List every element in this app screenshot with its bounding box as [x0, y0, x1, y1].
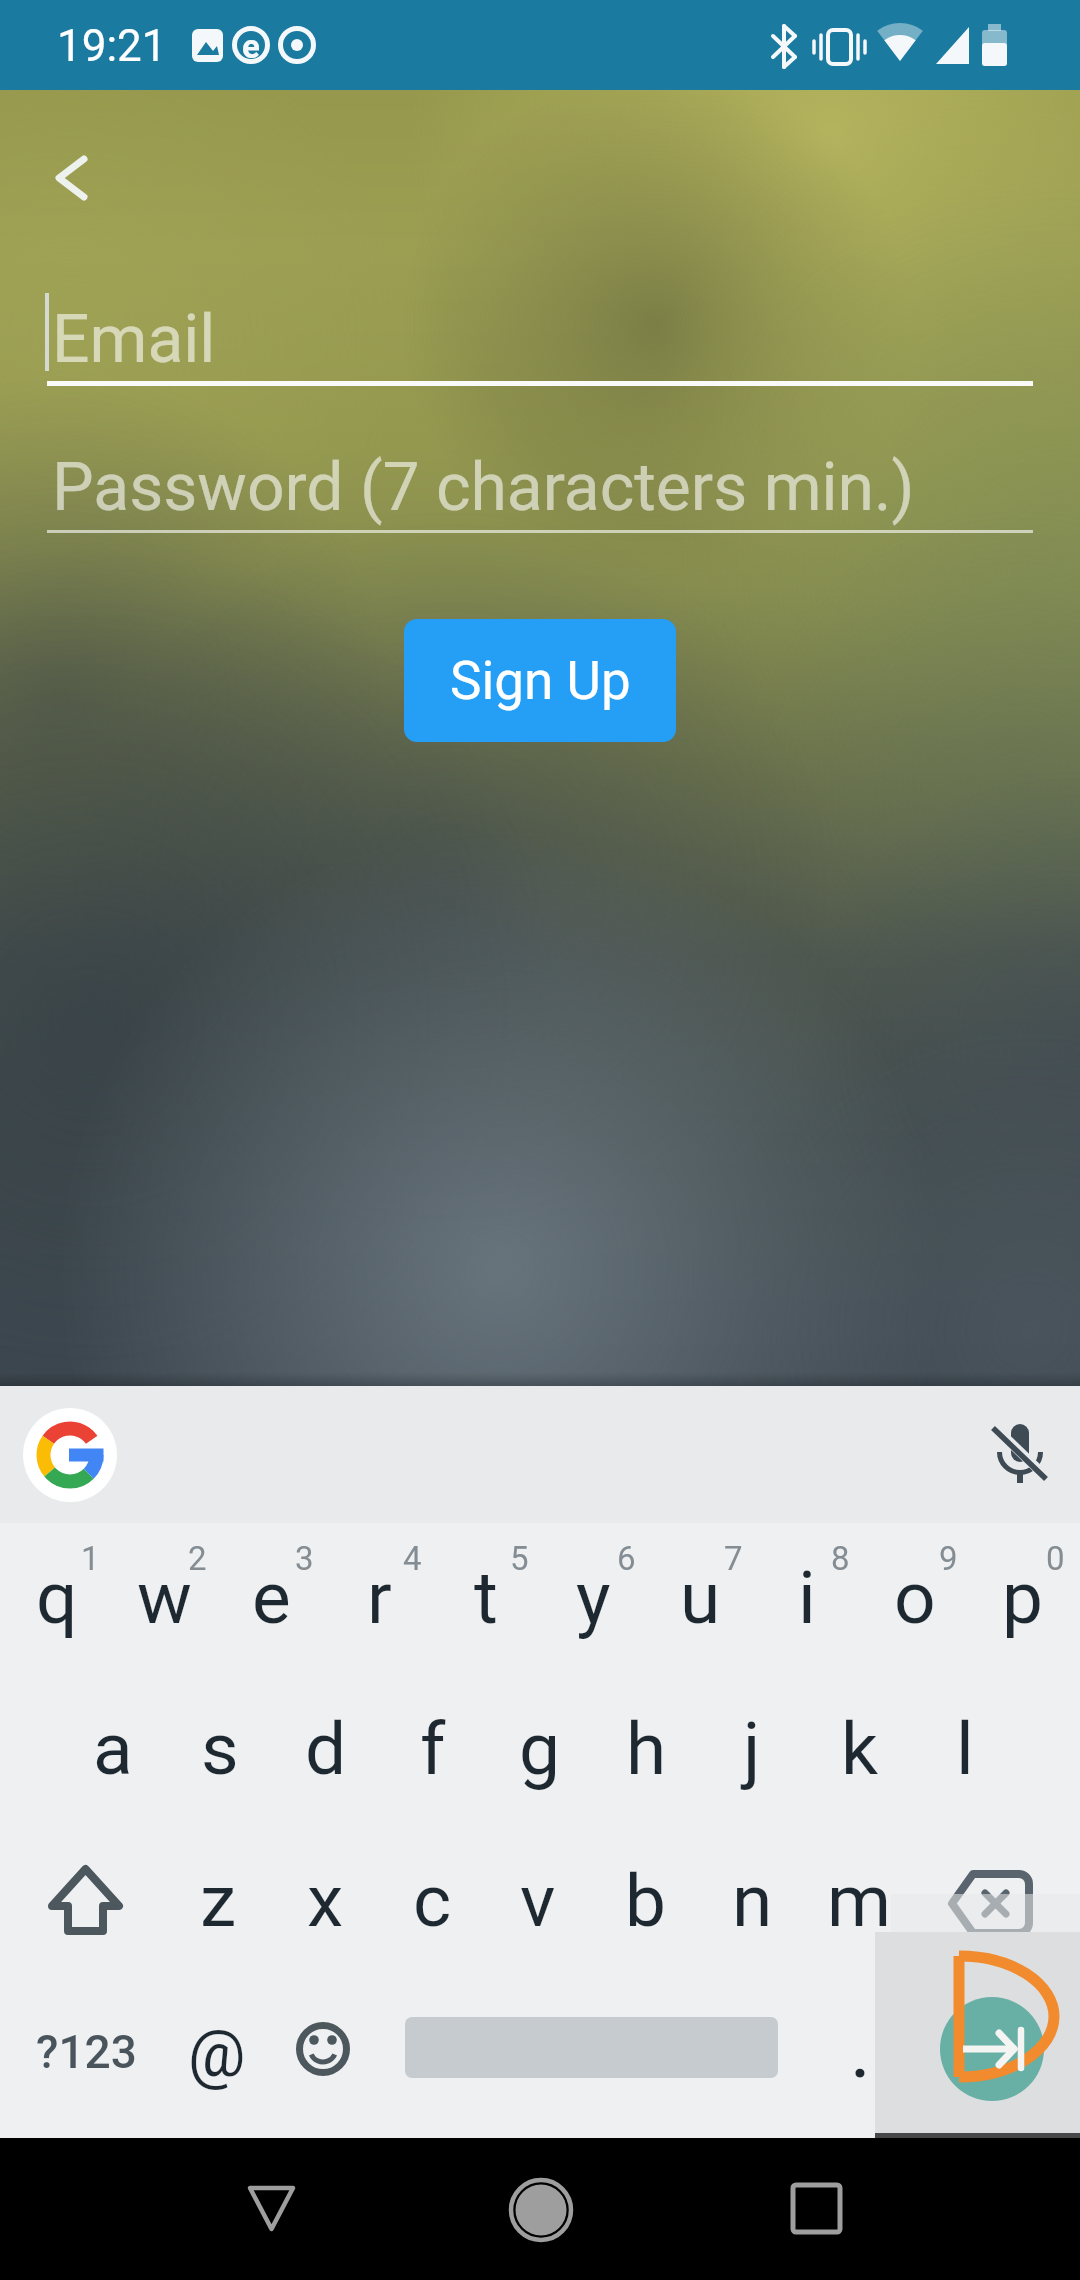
staticText: 9: [939, 1539, 958, 1578]
button[interactable]: f: [381, 1694, 485, 1804]
button[interactable]: [220, 2158, 320, 2258]
staticText: k: [841, 1706, 878, 1792]
button[interactable]: j: [700, 1694, 804, 1804]
staticText: 0: [1046, 1539, 1065, 1578]
staticText: y: [576, 1555, 611, 1641]
button[interactable]: c: [380, 1846, 484, 1956]
button[interactable]: Sign Up: [404, 619, 676, 742]
button[interactable]: s: [168, 1694, 272, 1804]
button[interactable]: [980, 1413, 1060, 1493]
staticText: l: [956, 1706, 974, 1792]
button[interactable]: b: [593, 1846, 697, 1956]
button[interactable]: d: [274, 1694, 378, 1804]
staticText: i: [798, 1555, 816, 1641]
staticText: z: [200, 1858, 237, 1944]
button[interactable]: m: [807, 1846, 911, 1956]
staticText: f: [420, 1706, 446, 1792]
button[interactable]: ?123: [21, 2002, 151, 2102]
button[interactable]: n: [700, 1846, 804, 1956]
button[interactable]: [40, 145, 110, 215]
staticText: q: [36, 1555, 78, 1641]
staticText: Email: [52, 301, 216, 378]
button[interactable]: [23, 1408, 117, 1502]
staticText: j: [743, 1706, 761, 1792]
staticText: o: [894, 1555, 936, 1641]
staticText: r: [367, 1555, 392, 1641]
staticText: t: [474, 1555, 498, 1641]
staticText: w: [137, 1555, 192, 1641]
button[interactable]: [36, 1850, 136, 1950]
button[interactable]: h: [594, 1694, 698, 1804]
staticText: x: [307, 1858, 344, 1944]
staticText: 4: [403, 1539, 422, 1578]
button[interactable]: r: [327, 1543, 431, 1653]
staticText: 8: [831, 1539, 850, 1578]
staticText: b: [625, 1858, 666, 1944]
staticText: v: [520, 1858, 556, 1944]
button[interactable]: [766, 2158, 866, 2258]
button[interactable]: x: [273, 1846, 377, 1956]
button[interactable]: l: [913, 1694, 1017, 1804]
button[interactable]: [47, 280, 1033, 390]
button[interactable]: [491, 2160, 591, 2260]
staticText: 5: [510, 1539, 529, 1578]
staticText: e: [252, 1555, 291, 1641]
button[interactable]: v: [486, 1846, 590, 1956]
staticText: u: [680, 1555, 721, 1641]
button[interactable]: [940, 1997, 1044, 2101]
staticText: Password (7 characters min.): [52, 449, 915, 526]
button[interactable]: z: [166, 1846, 270, 1956]
staticText: 19:21: [57, 20, 167, 72]
staticText: m: [827, 1858, 892, 1944]
button[interactable]: a: [61, 1694, 165, 1804]
staticText: d: [305, 1706, 347, 1792]
button[interactable]: [273, 1999, 373, 2099]
staticText: 6: [617, 1539, 636, 1578]
button[interactable]: i: [755, 1543, 859, 1653]
staticText: p: [1002, 1555, 1043, 1641]
button[interactable]: o: [863, 1543, 967, 1653]
staticText: a: [93, 1706, 133, 1792]
staticText: Sign Up: [450, 650, 631, 712]
button[interactable]: w: [112, 1543, 216, 1653]
button[interactable]: u: [648, 1543, 752, 1653]
staticText: c: [413, 1858, 452, 1944]
button[interactable]: e: [219, 1543, 323, 1653]
button[interactable]: [935, 1850, 1050, 1955]
staticText: .: [851, 2016, 870, 2093]
staticText: 2: [188, 1539, 207, 1578]
button[interactable]: q: [5, 1543, 109, 1653]
staticText: g: [519, 1706, 560, 1792]
staticText: 1: [81, 1539, 100, 1578]
button[interactable]: k: [807, 1694, 911, 1804]
staticText: 3: [295, 1539, 314, 1578]
button[interactable]: y: [541, 1543, 645, 1653]
staticText: @: [188, 2017, 246, 2092]
button[interactable]: p: [970, 1543, 1074, 1653]
staticText: n: [732, 1858, 773, 1944]
staticText: ?123: [36, 2025, 137, 2079]
staticText: e: [242, 27, 260, 66]
staticText: h: [626, 1706, 667, 1792]
button[interactable]: @: [167, 2004, 267, 2104]
button[interactable]: t: [434, 1543, 538, 1653]
staticText: 7: [724, 1539, 743, 1578]
button[interactable]: .: [815, 2009, 905, 2099]
button[interactable]: g: [487, 1694, 591, 1804]
staticText: s: [201, 1706, 239, 1792]
button[interactable]: [47, 430, 1033, 535]
